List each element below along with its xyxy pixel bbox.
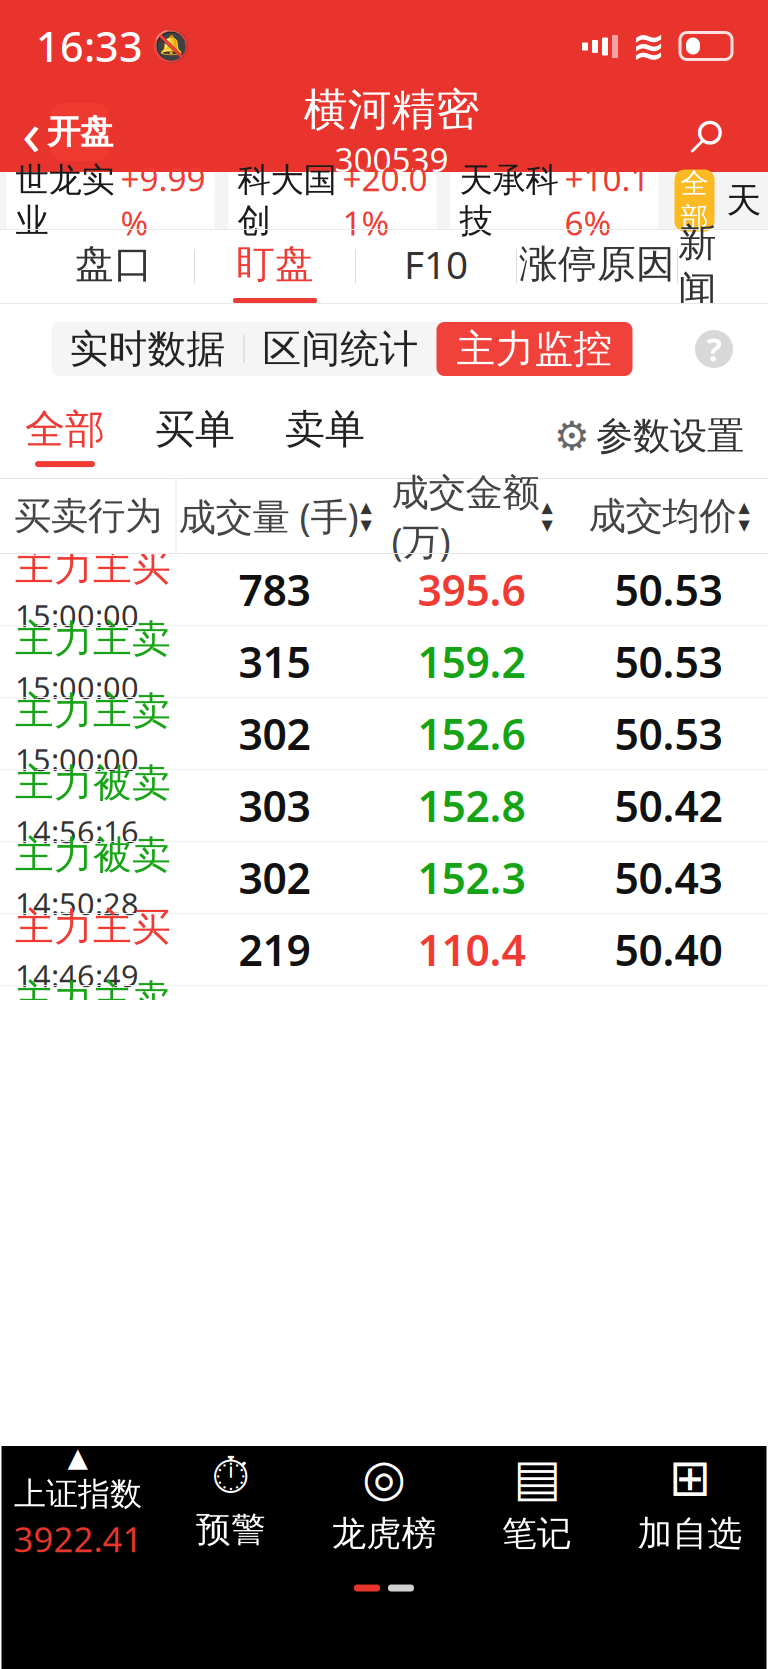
button[interactable]: ⏱ xyxy=(154,1446,307,1558)
staticText: 成交量 (手) xyxy=(178,491,358,541)
staticText: ▲ xyxy=(360,499,371,515)
button[interactable]: ⚙ xyxy=(554,413,768,459)
staticText: F10 xyxy=(404,238,468,290)
button[interactable]: 帮助 xyxy=(684,319,744,379)
button[interactable]: 盘口 xyxy=(34,230,194,303)
staticText: 50.53 xyxy=(614,705,722,762)
button[interactable]: 成交量 (手) xyxy=(176,479,373,553)
staticText: 部 xyxy=(680,200,708,235)
button[interactable]: 天承科技 xyxy=(450,172,658,229)
staticText: 科大国创 xyxy=(237,160,336,241)
staticText: 303 xyxy=(238,777,310,834)
button[interactable]: 卖单 xyxy=(260,394,390,478)
staticText: +9.99% xyxy=(120,156,205,245)
button[interactable]: 成交金额 (万) xyxy=(373,479,570,553)
staticText: 主力主卖 xyxy=(15,975,171,1023)
staticText: ⌕ xyxy=(690,98,729,166)
staticText: 主力被卖 xyxy=(15,831,171,879)
button[interactable]: 科大国创 xyxy=(228,172,436,229)
staticText: ▲ xyxy=(738,499,749,515)
staticText: ▲ xyxy=(541,499,552,515)
staticText: 开盘 xyxy=(47,111,113,152)
staticText: 世龙实业 xyxy=(15,160,114,241)
button[interactable]: 主力监控 xyxy=(436,322,632,376)
staticText: ▼ xyxy=(541,516,552,533)
staticText: 219 xyxy=(238,921,310,978)
staticText: 152.3 xyxy=(417,849,525,906)
staticText: 涨停原因 xyxy=(519,240,675,288)
staticText: 302 xyxy=(238,705,310,762)
staticText: +10.16% xyxy=(564,156,649,245)
staticText: 参数设置 xyxy=(596,413,744,459)
staticText: 3922.41 xyxy=(13,1516,142,1562)
staticText: 15:00:00 xyxy=(15,739,139,780)
staticText: 159.2 xyxy=(417,633,525,690)
staticText: 主力被卖 xyxy=(15,759,171,807)
staticText: 🔕 xyxy=(151,28,191,64)
staticText: 主力主买 xyxy=(15,543,171,591)
button[interactable]: 买单 xyxy=(130,394,260,478)
staticText: 全 xyxy=(680,166,708,200)
staticText: 15:00:00 xyxy=(15,595,139,636)
staticText: 盯盘 xyxy=(236,240,314,288)
button[interactable]: ▲ xyxy=(1,1446,154,1558)
staticText: 15:00:00 xyxy=(15,667,139,708)
staticText: 14:50:28 xyxy=(15,883,139,924)
staticText: 买单 xyxy=(155,405,235,454)
button[interactable]: ▤ xyxy=(460,1446,613,1558)
button[interactable]: 实时数据 xyxy=(51,322,243,376)
button[interactable]: F10 xyxy=(356,230,516,303)
staticText: ⊞ xyxy=(669,1449,711,1506)
staticText: 区间统计 xyxy=(262,325,418,373)
staticText: 50.43 xyxy=(614,849,722,906)
staticText: 50.53 xyxy=(614,561,722,618)
button[interactable]: 全部 xyxy=(0,394,130,478)
staticText: 16:33 xyxy=(36,19,143,73)
staticText: ‹ xyxy=(22,91,41,173)
staticText: 预警 xyxy=(196,1508,266,1551)
staticText: 300539 xyxy=(334,137,448,181)
staticText: 50.53 xyxy=(614,633,722,690)
button[interactable]: 世龙实业 xyxy=(6,172,214,229)
staticText: ⚙ xyxy=(554,413,590,459)
button[interactable]: 盯盘 xyxy=(195,230,355,303)
staticText: 主力主卖 xyxy=(15,615,171,663)
staticText: ◎ xyxy=(362,1449,406,1506)
staticText: 加自选 xyxy=(637,1512,742,1555)
staticText: ≋ xyxy=(632,23,666,69)
staticText: 买卖行为 xyxy=(14,493,162,539)
staticText: 横河精密 xyxy=(303,83,479,137)
button[interactable]: ◎ xyxy=(307,1446,460,1558)
staticText: ▼ xyxy=(360,516,371,533)
staticText: 783 xyxy=(238,561,310,618)
staticText: 成交金额 (万) xyxy=(391,466,539,566)
button[interactable]: ⊞ xyxy=(613,1446,766,1558)
staticText: 主力监控 xyxy=(456,325,612,373)
staticText: ▲ xyxy=(67,1442,88,1472)
staticText: 笔记 xyxy=(502,1512,572,1555)
button[interactable]: 成交均价 xyxy=(570,479,767,553)
staticText: 14:46:49 xyxy=(15,955,139,996)
staticText: ? xyxy=(706,328,721,370)
staticText: 110.4 xyxy=(417,921,525,978)
button[interactable]: 返回 xyxy=(0,91,113,173)
button[interactable]: 搜索 xyxy=(670,92,768,172)
button[interactable]: 涨停原因 xyxy=(517,230,677,303)
staticText: ⏱ xyxy=(211,1453,251,1502)
button[interactable]: 区间统计 xyxy=(244,322,436,376)
staticText: 152.6 xyxy=(417,705,525,762)
staticText: 14:56:16 xyxy=(15,811,139,852)
staticText: 50.42 xyxy=(614,777,722,834)
